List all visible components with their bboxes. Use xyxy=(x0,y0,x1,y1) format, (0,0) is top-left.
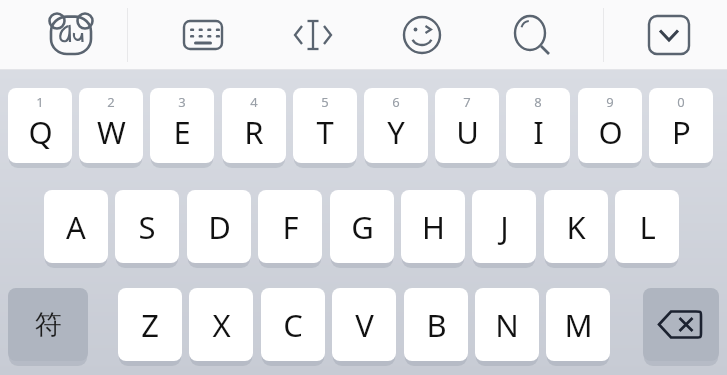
button[interactable]: B xyxy=(404,288,468,364)
button[interactable]: Hide keyboard xyxy=(628,6,710,64)
staticText: L xyxy=(639,206,656,248)
button[interactable]: Z xyxy=(118,288,182,364)
button[interactable]: 1 xyxy=(8,88,72,166)
button[interactable]: 2 xyxy=(79,88,143,166)
button[interactable]: C xyxy=(261,288,325,364)
staticText: N xyxy=(495,304,519,346)
button[interactable]: Move cursor xyxy=(273,6,353,64)
staticText: 4 xyxy=(250,93,258,111)
staticText: 7 xyxy=(463,93,471,111)
button[interactable]: H xyxy=(401,190,465,266)
staticText: U xyxy=(456,111,479,153)
staticText: V xyxy=(355,304,374,346)
button[interactable]: 9 xyxy=(578,88,642,166)
staticText: I xyxy=(533,111,544,153)
staticText: O xyxy=(598,111,623,153)
staticText: A xyxy=(66,206,86,248)
button[interactable]: D xyxy=(187,190,251,266)
button[interactable]: Search xyxy=(492,6,572,64)
staticText: M xyxy=(564,304,593,346)
button[interactable]: 8 xyxy=(506,88,570,166)
staticText: 2 xyxy=(107,93,115,111)
staticText: D xyxy=(208,206,231,248)
staticText: 3 xyxy=(178,93,186,111)
button[interactable]: A xyxy=(44,190,108,266)
button[interactable]: Baidu input method xyxy=(16,4,126,66)
staticText: Q xyxy=(28,111,53,153)
staticText: 9 xyxy=(606,93,614,111)
button[interactable]: 0 xyxy=(649,88,713,166)
staticText: 8 xyxy=(534,93,542,111)
staticText: 6 xyxy=(392,93,400,111)
staticText: C xyxy=(283,304,303,346)
button[interactable]: Emoji xyxy=(382,6,462,64)
staticText: R xyxy=(244,111,264,153)
staticText: X xyxy=(212,304,231,346)
staticText: J xyxy=(500,206,509,248)
button[interactable]: 7 xyxy=(435,88,499,166)
staticText: P xyxy=(672,111,691,153)
button[interactable]: F xyxy=(258,190,322,266)
button[interactable]: J xyxy=(472,190,536,266)
button[interactable]: N xyxy=(475,288,539,364)
staticText: Z xyxy=(141,304,159,346)
staticText: B xyxy=(426,304,447,346)
staticText: 0 xyxy=(677,93,685,111)
staticText: K xyxy=(566,206,586,248)
button[interactable]: 5 xyxy=(293,88,357,166)
button[interactable]: M xyxy=(546,288,610,364)
staticText: 5 xyxy=(321,93,329,111)
button[interactable]: Keyboard layout xyxy=(163,6,243,64)
button[interactable]: V xyxy=(332,288,396,364)
staticText: 符 xyxy=(35,308,62,342)
staticText: S xyxy=(138,206,156,248)
button[interactable]: 6 xyxy=(364,88,428,166)
button[interactable]: 3 xyxy=(150,88,214,166)
staticText: Y xyxy=(387,111,405,153)
button[interactable]: S xyxy=(115,190,179,266)
button[interactable]: L xyxy=(615,190,679,266)
button[interactable]: G xyxy=(330,190,394,266)
staticText: W xyxy=(97,111,126,153)
staticText: G xyxy=(351,206,374,248)
button[interactable]: 符 xyxy=(8,288,88,364)
staticText: H xyxy=(422,206,445,248)
button[interactable]: X xyxy=(189,288,253,364)
staticText: 1 xyxy=(36,93,44,111)
staticText: E xyxy=(173,111,191,153)
staticText: F xyxy=(282,206,299,248)
staticText: T xyxy=(316,111,334,153)
button[interactable]: K xyxy=(544,190,608,266)
button[interactable]: 4 xyxy=(222,88,286,166)
button[interactable]: Backspace xyxy=(643,288,719,364)
